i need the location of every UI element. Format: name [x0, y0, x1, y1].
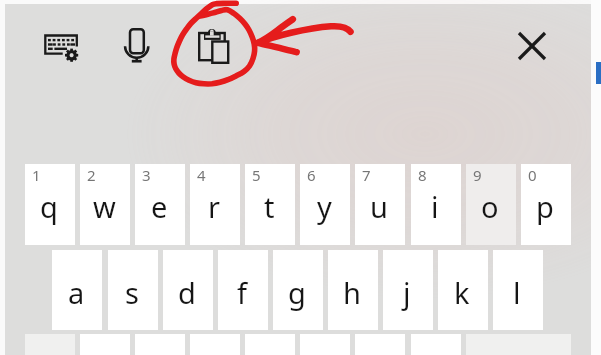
staticText: 5: [252, 165, 261, 185]
staticText: i: [431, 187, 439, 226]
button[interactable]: 0: [521, 164, 571, 245]
staticText: 8: [418, 165, 427, 185]
staticText: f: [237, 273, 247, 312]
button[interactable]: 8: [411, 164, 461, 245]
staticText: r: [208, 187, 220, 226]
button[interactable]: 5: [245, 164, 295, 245]
staticText: g: [288, 273, 306, 312]
staticText: 4: [197, 165, 206, 185]
button[interactable]: a: [52, 250, 102, 330]
staticText: u: [370, 187, 388, 226]
staticText: h: [343, 273, 361, 312]
button[interactable]: g: [273, 250, 323, 330]
staticText: a: [68, 273, 85, 312]
button[interactable]: 6: [300, 164, 350, 245]
staticText: e: [151, 187, 168, 226]
staticText: s: [125, 273, 139, 312]
staticText: l: [513, 273, 521, 312]
staticText: 0: [528, 165, 537, 185]
button[interactable]: Keyboard settings: [42, 31, 86, 67]
staticText: j: [403, 273, 411, 312]
button[interactable]: k: [438, 250, 488, 330]
button[interactable]: Clipboard: [196, 27, 232, 65]
staticText: 1: [32, 165, 41, 185]
button[interactable]: 4: [190, 164, 240, 245]
button[interactable]: 3: [135, 164, 185, 245]
button[interactable]: d: [163, 250, 213, 330]
staticText: 7: [362, 165, 371, 185]
button[interactable]: s: [108, 250, 158, 330]
staticText: q: [40, 187, 58, 226]
button[interactable]: 2: [80, 164, 130, 245]
button[interactable]: Voice input: [123, 27, 151, 65]
button[interactable]: 1: [25, 164, 75, 245]
button[interactable]: 9: [466, 164, 516, 245]
staticText: p: [536, 187, 554, 226]
staticText: d: [178, 273, 196, 312]
button[interactable]: f: [218, 250, 268, 330]
staticText: o: [481, 187, 499, 226]
staticText: k: [454, 273, 470, 312]
button[interactable]: l: [493, 250, 543, 330]
button[interactable]: 7: [355, 164, 405, 245]
staticText: 2: [87, 165, 96, 185]
button[interactable]: j: [383, 250, 433, 330]
button[interactable]: h: [328, 250, 378, 330]
button[interactable]: Close: [516, 30, 548, 62]
staticText: y: [317, 187, 332, 226]
staticText: t: [264, 187, 275, 226]
staticText: w: [93, 187, 116, 226]
staticText: 9: [473, 165, 482, 185]
staticText: 3: [142, 165, 151, 185]
staticText: 6: [307, 165, 316, 185]
